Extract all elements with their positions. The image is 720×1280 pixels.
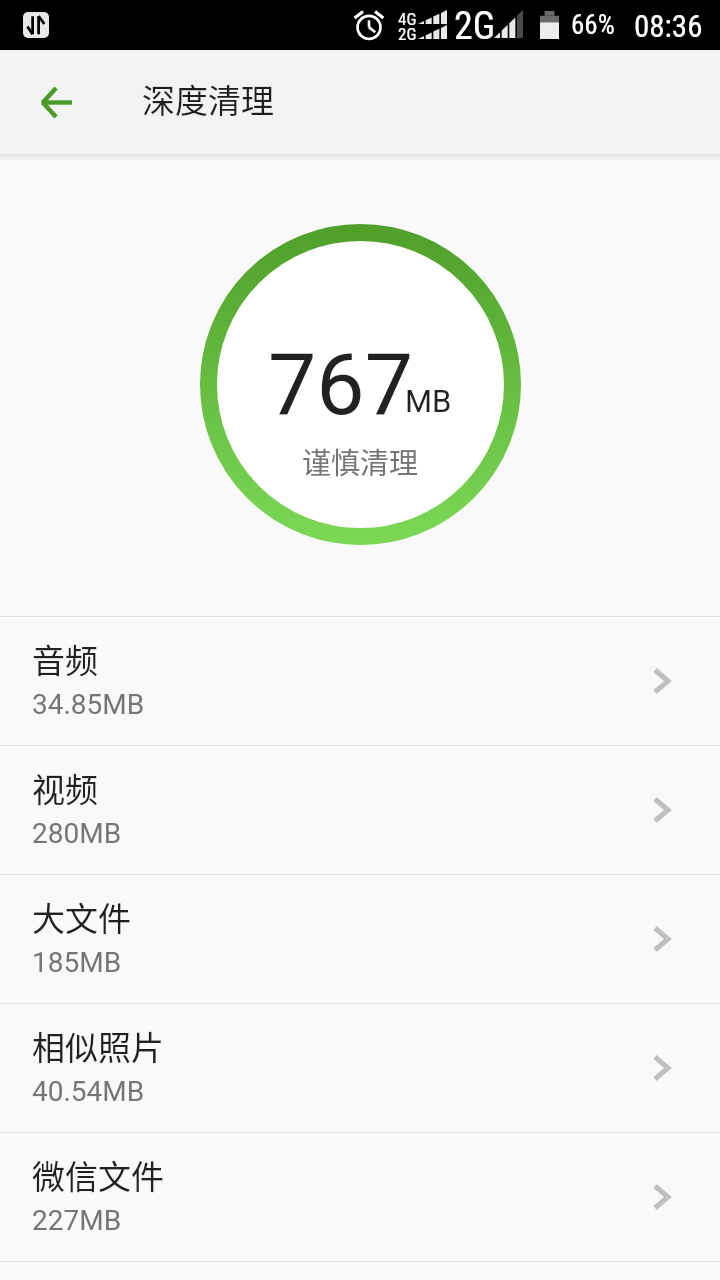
- staticText: 视频: [32, 764, 98, 812]
- staticText: MB: [405, 383, 452, 419]
- staticText: 34.85MB: [32, 688, 145, 721]
- button[interactable]: 大文件: [0, 875, 720, 1003]
- button[interactable]: 音频: [0, 617, 720, 745]
- staticText: 280MB: [32, 817, 122, 850]
- staticText: 185MB: [32, 946, 122, 979]
- staticText: 谨慎清理: [302, 440, 419, 482]
- staticText: 2G: [454, 4, 496, 49]
- button[interactable]: 视频: [0, 746, 720, 874]
- staticText: 音频: [32, 635, 98, 683]
- staticText: 相似照片: [32, 1022, 164, 1070]
- button[interactable]: 相似照片: [0, 1004, 720, 1132]
- staticText: 微信文件: [32, 1151, 164, 1199]
- staticText: 4G: [398, 9, 417, 29]
- staticText: 大文件: [32, 893, 131, 941]
- staticText: 227MB: [32, 1204, 122, 1237]
- staticText: 66%: [571, 9, 615, 41]
- staticText: 767: [268, 334, 413, 435]
- button[interactable]: 微信文件: [0, 1133, 720, 1261]
- staticText: 深度清理: [142, 75, 274, 123]
- staticText: 2G: [398, 24, 417, 44]
- staticText: 40.54MB: [32, 1075, 145, 1108]
- button[interactable]: Back: [20, 50, 92, 154]
- staticText: 08:36: [634, 8, 703, 44]
